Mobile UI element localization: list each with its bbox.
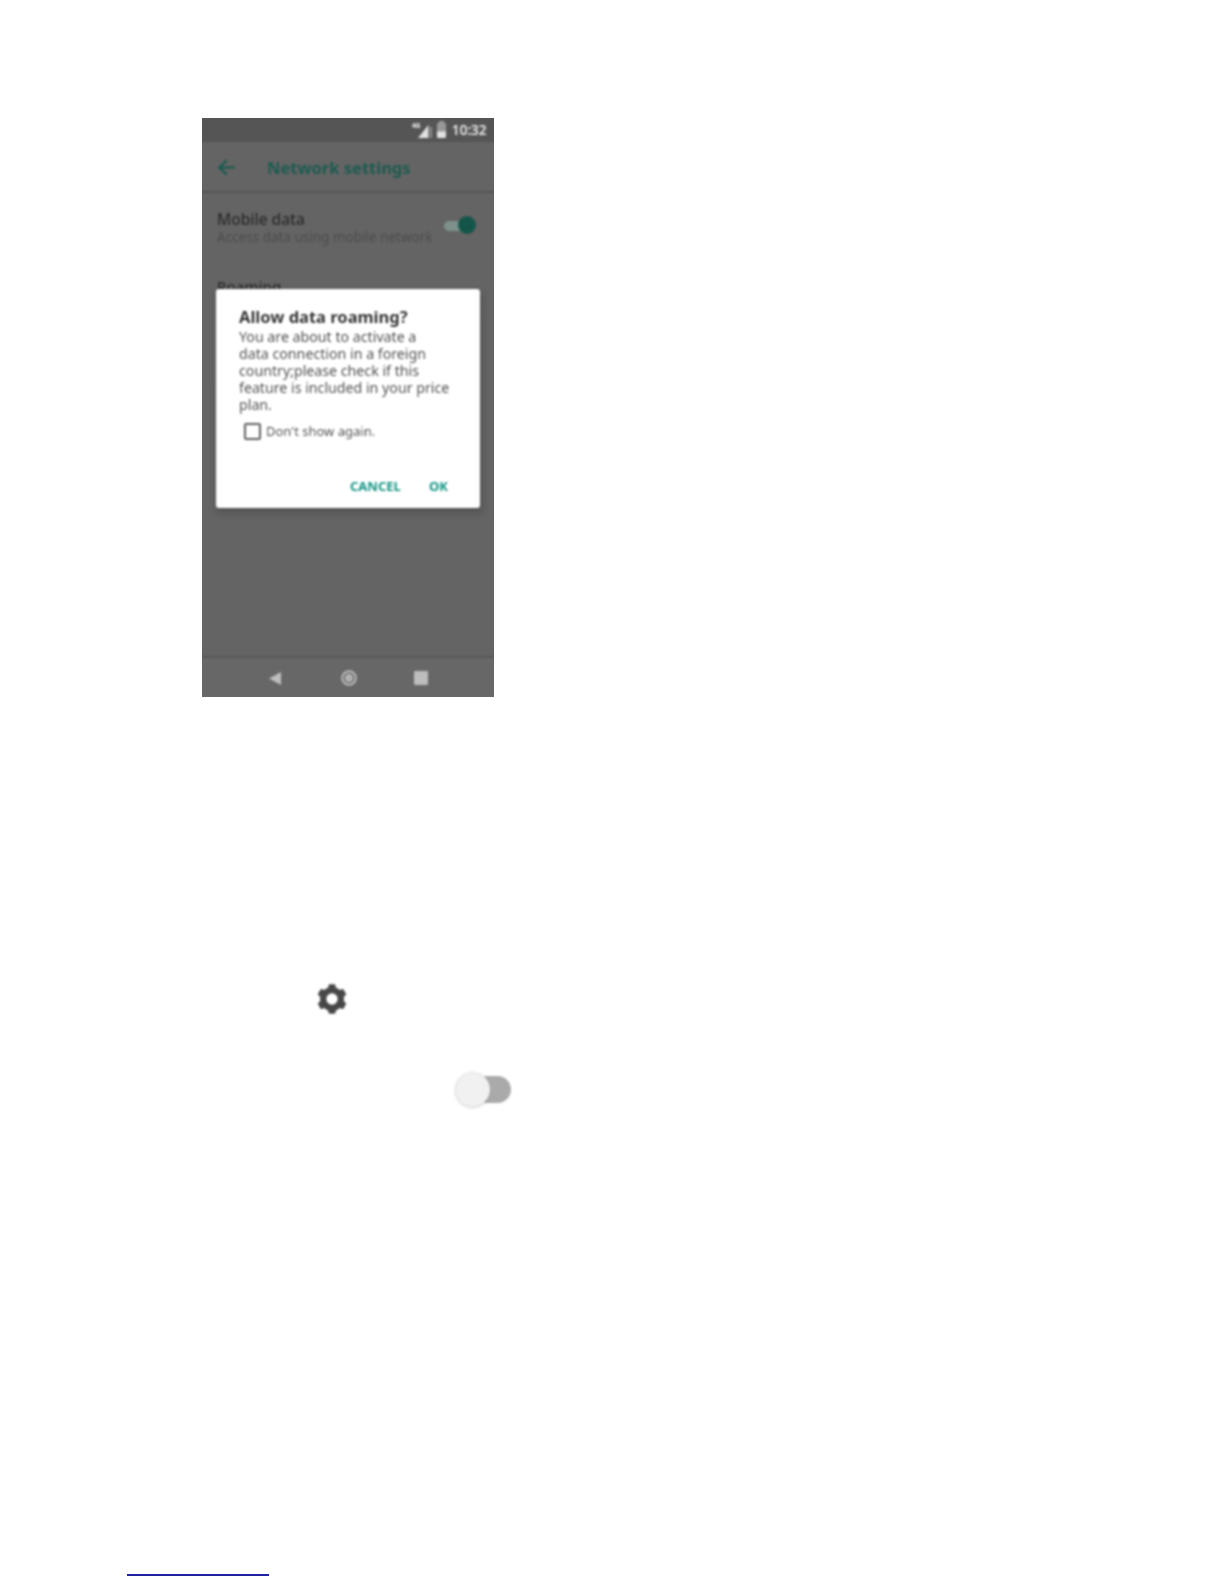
staticText: Roaming — [217, 276, 282, 296]
staticText: CANCEL — [350, 477, 401, 495]
staticText: 10:32 — [452, 121, 487, 139]
staticText: Network settings — [267, 156, 411, 178]
staticText: Mobile data — [217, 208, 305, 229]
button[interactable]: Mobile data — [202, 198, 494, 258]
button[interactable] — [315, 982, 349, 1016]
button[interactable] — [262, 665, 288, 691]
button[interactable]: Don't show again. — [240, 422, 376, 440]
staticText: 4G — [412, 121, 421, 130]
button[interactable]: CANCEL — [336, 471, 414, 501]
staticText: You are about to activate a data connect… — [239, 327, 450, 414]
button[interactable]: OK — [413, 471, 463, 501]
button[interactable] — [336, 665, 362, 691]
staticText: Access data using mobile network — [217, 228, 433, 246]
staticText: Allow data roaming? — [239, 305, 408, 327]
staticText: Don't show again. — [266, 422, 376, 440]
staticText: OK — [429, 477, 448, 495]
button[interactable] — [408, 665, 434, 691]
button[interactable] — [210, 150, 244, 184]
button[interactable] — [450, 1066, 516, 1112]
